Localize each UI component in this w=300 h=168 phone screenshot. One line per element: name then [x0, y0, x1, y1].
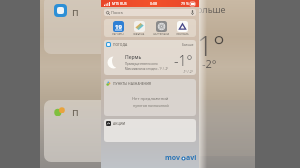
staticText: РЕКЛАМА	[176, 33, 189, 35]
staticText: Пермь	[125, 54, 142, 61]
button[interactable]: ПОГОДА	[104, 40, 196, 75]
staticText: ольше	[197, 3, 226, 15]
staticText: 79 %	[181, 1, 189, 6]
staticText: MTS RUS	[112, 1, 127, 6]
other: Settings	[156, 21, 167, 32]
staticText: НАСТРОЙКИ	[153, 33, 169, 35]
button[interactable]: ПУНКТЫ НАЗНАЧЕНИЯ	[104, 79, 196, 116]
staticText: Преимущественно ясно	[125, 62, 158, 66]
staticText: 0:08	[150, 1, 157, 6]
staticText: Нет предложений	[132, 96, 169, 102]
staticText: ВИЖЕНА	[133, 33, 145, 35]
button[interactable]: АКЦИИ	[104, 119, 196, 142]
staticText: / -2°	[195, 56, 217, 71]
staticText: 1°	[197, 26, 225, 64]
staticText: Поиск	[111, 10, 123, 15]
button[interactable]: Ads	[172, 21, 192, 35]
staticText: mov	[165, 153, 181, 163]
staticText: Максимальная сегодня: -1° / -2°	[125, 67, 169, 71]
staticText: -1° / -2°	[183, 70, 193, 74]
staticText: ПОГОДА	[113, 42, 128, 47]
other: Ads	[177, 21, 188, 32]
button[interactable]: Calendar	[108, 21, 128, 35]
staticText: ПУНКТЫ НАЗНАЧЕНИЯ	[113, 81, 151, 86]
staticText: Больше	[182, 43, 194, 47]
staticText: РАСЧЕТЫ	[112, 33, 124, 35]
button[interactable]: Поиск	[104, 9, 196, 16]
staticText: avi	[186, 153, 197, 163]
staticText: -1°	[174, 51, 193, 70]
button[interactable]: Gallery	[129, 21, 149, 35]
staticText: пунктов назначений	[133, 103, 169, 108]
staticText: АКЦИИ	[113, 121, 126, 126]
other: Gallery	[134, 21, 145, 32]
button[interactable]: Settings	[151, 21, 171, 35]
other: Calendar	[113, 21, 124, 32]
staticText: 19	[115, 23, 122, 31]
staticText: п	[72, 104, 79, 119]
staticText: п	[72, 4, 79, 19]
